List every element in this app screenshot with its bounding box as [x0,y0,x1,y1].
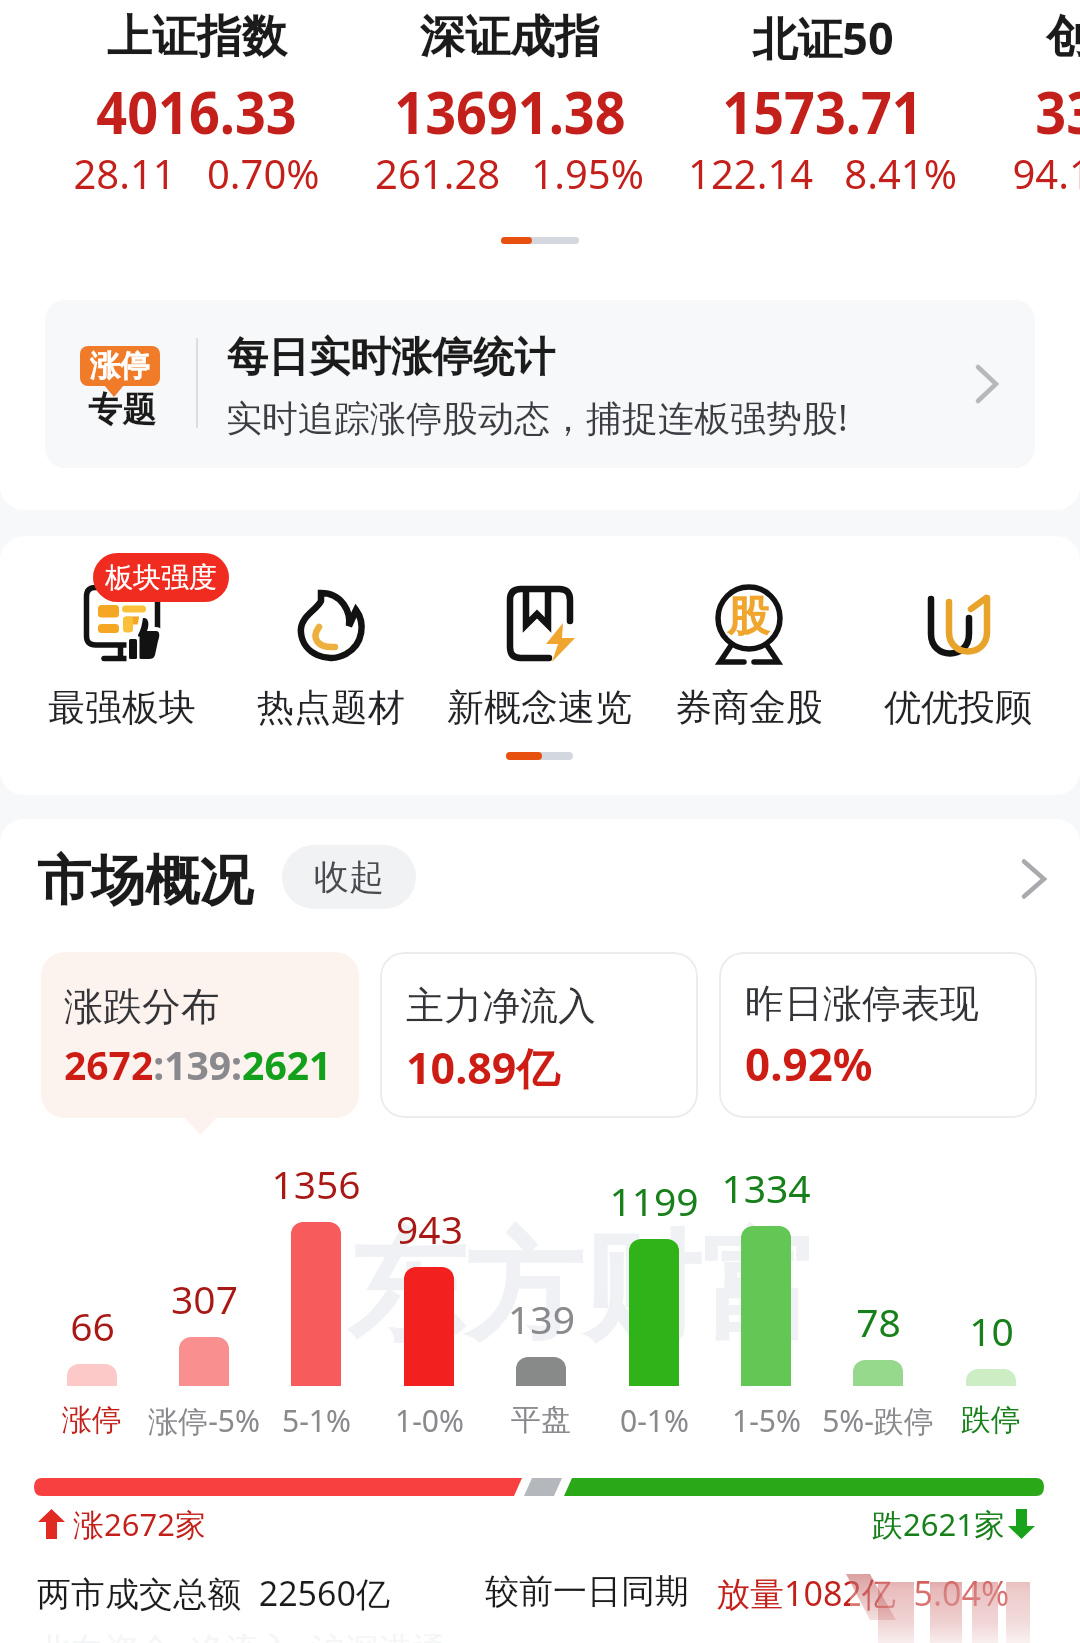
staticText: 涨跌分布 [64,982,220,1031]
staticText: 市场概况 [37,847,253,915]
button[interactable]: 收起 [282,845,416,909]
staticText: 94.12 2.85% [1012,146,1080,200]
staticText: 1356 [271,1157,361,1210]
button[interactable]: 最强板块 [17,560,226,730]
staticText: 专题 [88,388,156,431]
staticText: 北向资金 净流入 沪深港通 [37,1626,447,1643]
button[interactable]: 深证成指 [353,0,666,215]
staticText: 13691.38 [394,70,626,151]
button[interactable]: 上证指数 [40,0,353,215]
staticText: 涨2672家 [73,1503,206,1545]
staticText: 昨日涨停表现 [745,979,979,1028]
staticText: 优优投顾 [884,684,1032,731]
staticText: 1199 [609,1174,699,1227]
staticText: 0-1% [620,1400,689,1440]
button[interactable]: 新概念速览 [435,560,644,730]
staticText: 涨停 [62,1401,122,1439]
staticText: 943 [396,1202,463,1255]
staticText: 3394.70 [1035,70,1080,151]
staticText: 最强板块 [48,684,196,731]
staticText: 1-0% [395,1400,464,1440]
staticText: 涨停 [90,347,150,385]
staticText: 热点题材 [257,684,405,731]
staticText: 券商金股 [675,684,823,731]
button[interactable]: 创业板指 [979,0,1080,215]
staticText: 10.89亿 [406,1038,560,1097]
staticText: 122.14 8.41% [688,146,957,200]
staticText: 0.92% [745,1034,873,1094]
button[interactable]: 热点题材 [226,560,435,730]
staticText: 较前一日同期 [485,1570,689,1613]
staticText: 上证指数 [107,9,287,66]
staticText: 1-5% [732,1400,801,1440]
staticText: 307 [171,1272,238,1325]
staticText: 跌停 [961,1401,1021,1439]
staticText: 板块强度 [105,560,217,595]
staticText: 1334 [721,1161,811,1214]
staticText: 2672:139:2621 [64,1038,332,1091]
staticText: 139 [508,1292,575,1345]
staticText: 1573.71 [722,70,923,151]
staticText: 66 [70,1299,115,1352]
staticText: 主力净流入 [406,982,596,1030]
button[interactable]: 券商金股 [644,560,853,730]
button[interactable]: 更多 [1000,845,1066,911]
staticText: 两市成交总额 22560亿 [37,1570,390,1616]
staticText: 实时追踪涨停股动态，捕捉连板强势股! [226,393,848,442]
staticText: 平盘 [511,1401,571,1439]
staticText: 每日实时涨停统计 [227,332,555,384]
button[interactable]: 每日实时涨停统计 [45,300,1035,468]
staticText: 78 [856,1295,901,1348]
staticText: 5%-跌停 [822,1400,934,1440]
staticText: 跌2621家 [872,1503,1005,1545]
button[interactable]: 主力净流入 [380,952,698,1118]
staticText: 股 [727,591,769,644]
button[interactable]: 北证50 [666,0,979,215]
staticText: 深证成指 [420,9,600,66]
staticText: 涨停-5% [148,1400,260,1440]
staticText: 5-1% [282,1400,351,1440]
staticText: 东方财富 [347,1214,819,1363]
staticText: 28.11 0.70% [73,146,320,200]
staticText: 北证50 [752,7,894,68]
staticText: 4016.33 [96,70,297,151]
staticText: 放量1082亿 5.04% [716,1570,1010,1616]
staticText: 10 [969,1304,1014,1357]
staticText: 新概念速览 [447,684,632,731]
staticText: 收起 [314,855,384,899]
button[interactable]: 涨跌分布 [41,952,359,1118]
button[interactable]: 优优投顾 [853,560,1062,730]
staticText: 创业板指 [1046,9,1080,66]
button[interactable]: 昨日涨停表现 [719,952,1037,1118]
staticText: 261.28 1.95% [375,146,644,200]
